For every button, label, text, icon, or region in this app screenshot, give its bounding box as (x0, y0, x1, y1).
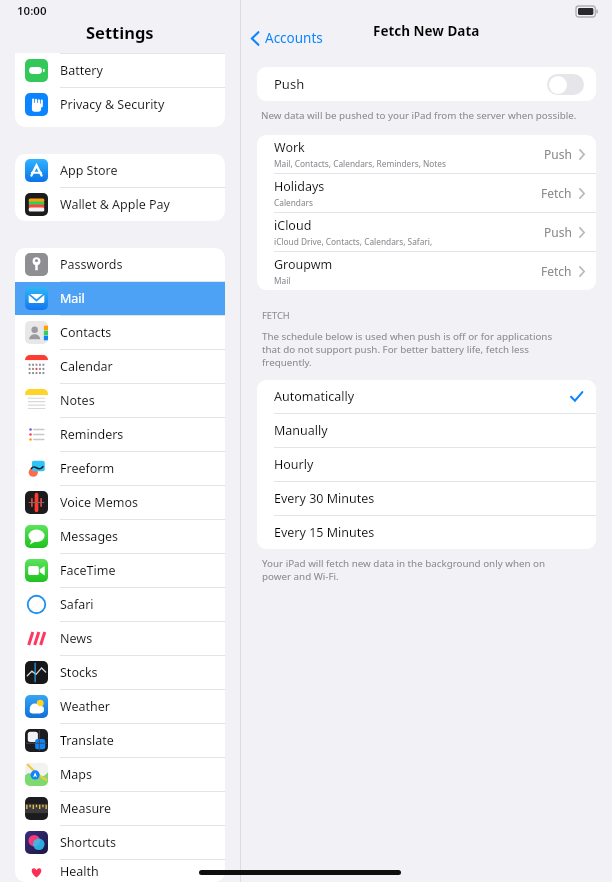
button[interactable]: Holidays (257, 174, 596, 212)
button[interactable]: App Store (15, 154, 225, 187)
button[interactable]: Work (257, 135, 596, 173)
staticText: iCloud (274, 217, 312, 234)
staticText: Passwords (60, 256, 123, 273)
staticText: New data will be pushed to your iPad fro… (261, 109, 577, 122)
staticText: Wallet & Apple Pay (60, 196, 170, 213)
staticText: Fetch New Data (373, 22, 480, 40)
staticText: Every 15 Minutes (274, 524, 375, 541)
button[interactable]: Calendar (15, 350, 225, 383)
button[interactable]: Health (15, 860, 225, 882)
button[interactable]: Every 30 Minutes (257, 482, 596, 515)
staticText: Hourly (274, 456, 314, 473)
staticText: Mail (60, 290, 85, 307)
button[interactable]: Every 15 Minutes (257, 516, 596, 549)
staticText: Push (544, 146, 572, 162)
button[interactable]: Contacts (15, 316, 225, 349)
button[interactable]: Voice Memos (15, 486, 225, 519)
button[interactable]: Weather (15, 690, 225, 723)
staticText: Mail, Contacts, Calendars, Reminders, No… (274, 158, 447, 169)
button[interactable]: Shortcuts (15, 826, 225, 859)
staticText: Push (274, 75, 305, 93)
button[interactable]: Push (257, 67, 596, 101)
staticText: FETCH (262, 309, 290, 322)
button[interactable]: Measure (15, 792, 225, 825)
button[interactable]: News (15, 622, 225, 655)
staticText: Calendar (60, 358, 113, 375)
staticText: Privacy & Security (60, 96, 165, 113)
button[interactable]: Accounts (241, 25, 331, 51)
staticText: Work (274, 139, 305, 156)
button[interactable]: Automatically (257, 380, 596, 413)
other: Open (579, 266, 585, 277)
staticText: Settings (86, 21, 154, 43)
staticText: Maps (60, 766, 93, 783)
staticText: 10:00 (17, 3, 47, 19)
button[interactable]: Groupwm (257, 252, 596, 290)
staticText: Holidays (274, 178, 325, 195)
staticText: News (60, 630, 93, 647)
staticText: Manually (274, 422, 328, 439)
staticText: Weather (60, 698, 110, 715)
button[interactable]: Messages (15, 520, 225, 553)
staticText: Stocks (60, 664, 98, 681)
staticText: Messages (60, 528, 119, 545)
button[interactable]: Hourly (257, 448, 596, 481)
button[interactable]: Stocks (15, 656, 225, 689)
other: Open (579, 188, 585, 199)
button[interactable]: Notes (15, 384, 225, 417)
button[interactable]: Manually (257, 414, 596, 447)
staticText: Calendars (274, 197, 314, 208)
staticText: Your iPad will fetch new data in the bac… (262, 557, 573, 583)
button[interactable]: Safari (15, 588, 225, 621)
staticText: iCloud Drive, Contacts, Calendars, Safar… (274, 236, 476, 247)
staticText: App Store (60, 162, 118, 179)
staticText: Reminders (60, 426, 124, 443)
staticText: Fetch (541, 263, 572, 279)
other: Open (579, 149, 585, 160)
staticText: Health (60, 863, 99, 880)
staticText: The schedule below is used when push is … (262, 330, 573, 369)
other: Open (579, 227, 585, 238)
staticText: Measure (60, 800, 112, 817)
staticText: Push (544, 224, 572, 240)
staticText: Contacts (60, 324, 112, 341)
staticText: Every 30 Minutes (274, 490, 375, 507)
button[interactable]: Reminders (15, 418, 225, 451)
staticText: Accounts (265, 29, 323, 47)
staticText: Safari (60, 596, 94, 613)
button[interactable]: Maps (15, 758, 225, 791)
staticText: Battery (60, 62, 103, 79)
button[interactable]: Push toggle (547, 74, 584, 95)
button[interactable]: Mail (15, 282, 225, 315)
button[interactable]: Privacy & Security (15, 88, 225, 121)
button[interactable]: Wallet & Apple Pay (15, 188, 225, 221)
staticText: Fetch (541, 185, 572, 201)
button[interactable]: FaceTime (15, 554, 225, 587)
button[interactable]: Translate (15, 724, 225, 757)
button[interactable]: iCloud (257, 213, 596, 251)
button[interactable]: Battery (15, 54, 225, 87)
staticText: Shortcuts (60, 834, 117, 851)
staticText: Freeform (60, 460, 115, 477)
staticText: Notes (60, 392, 95, 409)
staticText: Translate (60, 732, 114, 749)
staticText: FaceTime (60, 562, 116, 579)
staticText: Groupwm (274, 256, 333, 273)
staticText: Voice Memos (60, 494, 138, 511)
button[interactable]: Freeform (15, 452, 225, 485)
staticText: Mail (274, 275, 291, 286)
staticText: Automatically (274, 388, 355, 405)
button[interactable]: Passwords (15, 248, 225, 281)
